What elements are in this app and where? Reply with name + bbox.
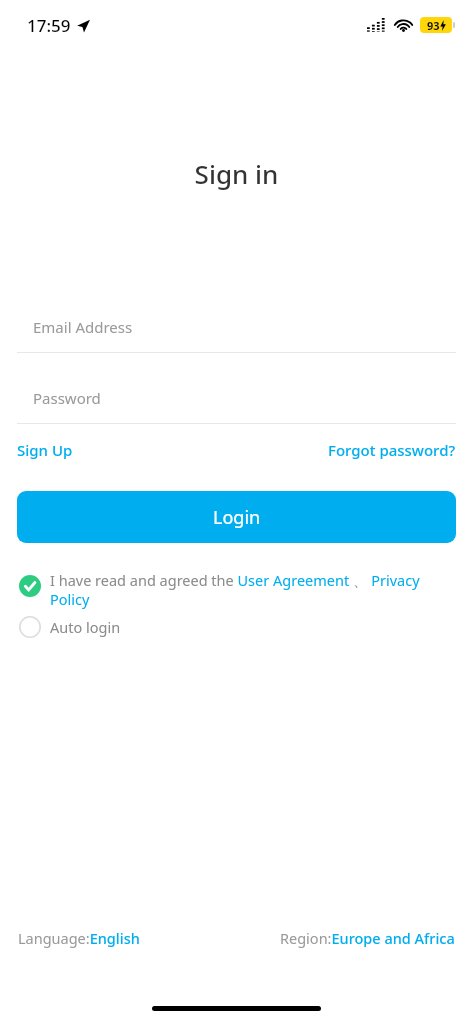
button[interactable]: Email Address	[0, 302, 473, 352]
staticText: Auto login	[50, 617, 121, 637]
button[interactable]: Forgot password?	[328, 434, 456, 466]
button[interactable]: Auto login	[19, 616, 121, 638]
staticText: Sign Up	[17, 440, 73, 460]
button[interactable]: Region:Europe and Africa	[280, 924, 455, 952]
staticText: 93	[427, 18, 440, 33]
button[interactable]: Login	[17, 491, 456, 543]
staticText: Language:English	[18, 928, 140, 948]
button[interactable]: Password	[0, 373, 473, 423]
button[interactable]: I have read and agreed the User Agreemen…	[19, 570, 456, 609]
staticText: Forgot password?	[328, 440, 456, 460]
staticText: Email Address	[33, 317, 133, 337]
staticText: Login	[213, 505, 261, 530]
button[interactable]: Sign Up	[17, 434, 73, 466]
staticText: Sign in	[0, 156, 473, 191]
staticText: Region:Europe and Africa	[280, 928, 455, 948]
staticText: Password	[33, 388, 101, 408]
button[interactable]: Language:English	[18, 924, 140, 952]
staticText: I have read and agreed the User Agreemen…	[50, 570, 456, 609]
staticText: 17:59	[27, 14, 71, 37]
